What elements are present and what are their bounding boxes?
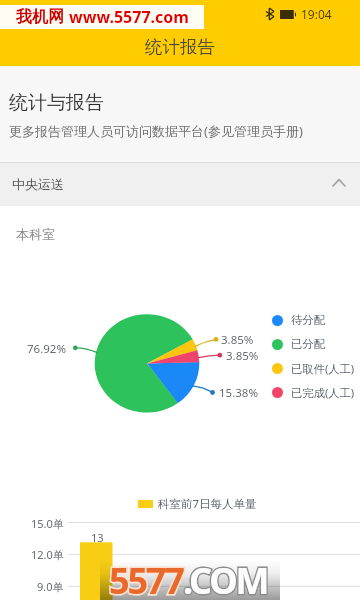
staticText: 12.0单 <box>31 547 64 562</box>
staticText: 科室前7日每人单量 <box>158 496 257 512</box>
staticText: 5577 <box>109 556 183 600</box>
staticText: 我机网 <box>16 7 64 27</box>
other: Collapse 中央运送 <box>329 174 349 194</box>
button[interactable]: 中央运送 <box>0 162 360 206</box>
staticText: 3.85% <box>226 348 259 364</box>
staticText: 待分配 <box>291 313 325 327</box>
staticText: .COM <box>183 556 268 600</box>
staticText: 已取件(人工) <box>291 361 355 376</box>
staticText: 更多报告管理人员可访问数据平台(参见管理员手册) <box>9 122 303 140</box>
staticText: www.5577.com <box>69 6 189 28</box>
staticText: 统计报告 <box>145 36 215 58</box>
staticText: 本科室 <box>16 226 55 242</box>
button[interactable]: 已取件(人工) <box>272 357 355 379</box>
staticText: 5577 <box>109 556 183 600</box>
button[interactable]: 待分配 <box>272 309 325 331</box>
staticText: 已完成(人工) <box>291 385 355 400</box>
staticText: 13 <box>91 530 104 545</box>
staticText: .COM <box>183 556 268 600</box>
staticText: 已分配 <box>291 337 325 351</box>
staticText: 3.85% <box>221 332 254 348</box>
staticText: 19:04 <box>301 6 332 22</box>
button[interactable]: 已完成(人工) <box>272 381 355 403</box>
button[interactable]: 已分配 <box>272 333 325 355</box>
staticText: 15.0单 <box>31 516 64 531</box>
staticText: 统计与报告 <box>9 91 104 115</box>
staticText: 9.0单 <box>37 579 64 594</box>
staticText: 中央运送 <box>12 176 64 192</box>
staticText: 15.38% <box>219 385 258 401</box>
staticText: 76.92% <box>27 341 66 357</box>
